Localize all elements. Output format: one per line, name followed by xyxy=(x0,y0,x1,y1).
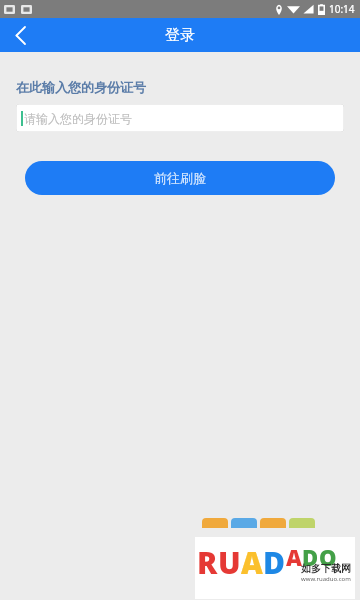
staticText: R xyxy=(197,542,218,583)
staticText: 如多下载网 xyxy=(301,562,351,575)
staticText: U xyxy=(218,542,241,583)
staticText: A xyxy=(241,542,263,583)
staticText: A xyxy=(286,542,302,572)
staticText: 在此输入您的身份证号 xyxy=(16,79,146,95)
staticText: 前往刷脸 xyxy=(154,170,206,186)
staticText: www.ruaduo.com xyxy=(301,575,351,583)
button[interactable]: 请输入您的身份证号 xyxy=(16,104,344,132)
staticText: 登录 xyxy=(165,26,195,45)
staticText: 10:14 xyxy=(329,2,355,16)
staticText: O xyxy=(319,542,337,572)
staticText: 请输入您的身份证号 xyxy=(24,111,132,126)
staticText: D xyxy=(302,542,319,572)
button[interactable]: Back xyxy=(0,18,40,52)
button[interactable]: 前往刷脸 xyxy=(25,161,335,195)
staticText: D xyxy=(263,542,286,583)
